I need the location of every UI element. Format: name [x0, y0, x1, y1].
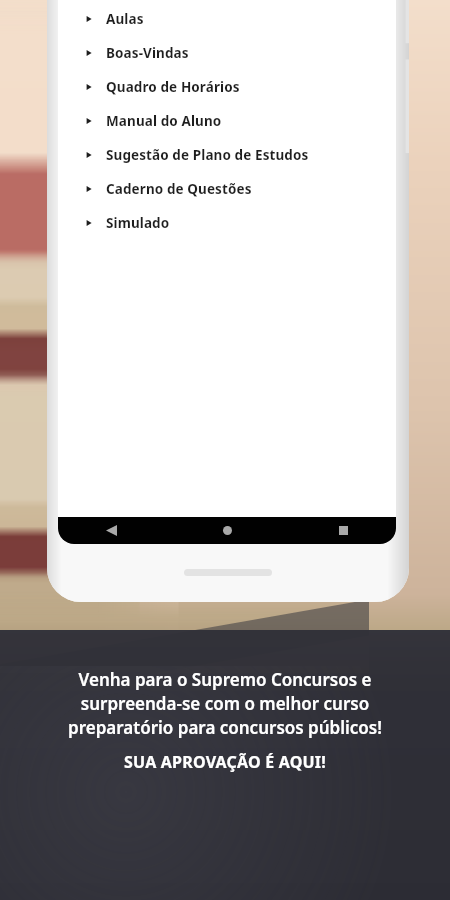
staticText: Sugestão de Plano de Estudos — [106, 146, 309, 164]
button[interactable]: Caderno de Questões — [58, 172, 396, 206]
button[interactable]: Recent apps — [320, 517, 366, 544]
button[interactable]: Quadro de Horários — [58, 70, 396, 104]
staticText: Boas-Vindas — [106, 44, 189, 62]
staticText: SUA APROVAÇÃO É AQUI! — [124, 751, 326, 773]
button[interactable]: Aulas — [58, 2, 396, 36]
button[interactable]: Simulado — [58, 206, 396, 240]
button[interactable]: Home — [204, 517, 250, 544]
staticText: Caderno de Questões — [106, 180, 252, 198]
staticText: Aulas — [106, 10, 144, 28]
button[interactable]: Boas-Vindas — [58, 36, 396, 70]
staticText: Quadro de Horários — [106, 78, 240, 96]
staticText: Simulado — [106, 214, 170, 232]
staticText: Manual do Aluno — [106, 112, 222, 130]
button[interactable]: Back — [88, 517, 134, 544]
button[interactable]: Manual do Aluno — [58, 104, 396, 138]
staticText: Venha para o Supremo Concursos e surpree… — [68, 668, 382, 739]
button[interactable]: Sugestão de Plano de Estudos — [58, 138, 396, 172]
